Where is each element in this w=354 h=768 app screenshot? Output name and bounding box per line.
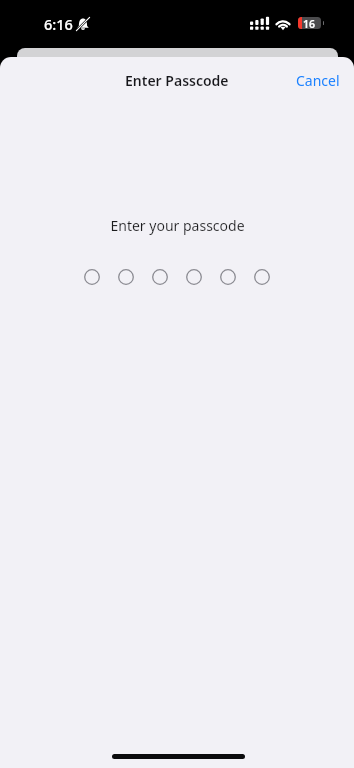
staticText: Enter Passcode (125, 71, 229, 90)
other: Silent mode (76, 17, 90, 31)
staticText: 6:16 (44, 14, 73, 34)
staticText: Cancel (296, 71, 340, 90)
staticText: 16 (303, 17, 316, 29)
staticText: Enter your passcode (110, 216, 245, 235)
button[interactable]: Passcode field, 6 digits (84, 269, 270, 285)
button[interactable]: Cancel (280, 57, 354, 96)
